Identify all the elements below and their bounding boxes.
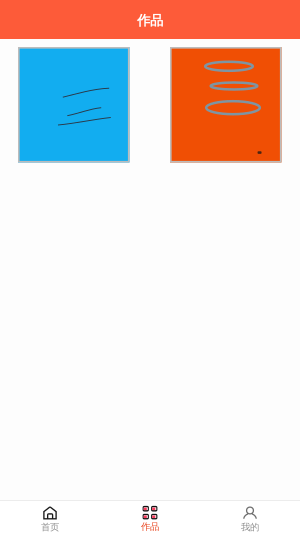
staticText: 作品 [141, 521, 159, 532]
button[interactable]: 首页 [0, 500, 100, 533]
button[interactable]: 我的 [200, 500, 300, 533]
staticText: 首页 [41, 521, 59, 533]
button[interactable]: 作品 [100, 500, 200, 533]
staticText: 我的 [241, 521, 259, 533]
staticText: 作品 [137, 12, 163, 29]
button[interactable]: Artwork [18, 47, 129, 162]
button[interactable]: Artwork [170, 47, 281, 162]
